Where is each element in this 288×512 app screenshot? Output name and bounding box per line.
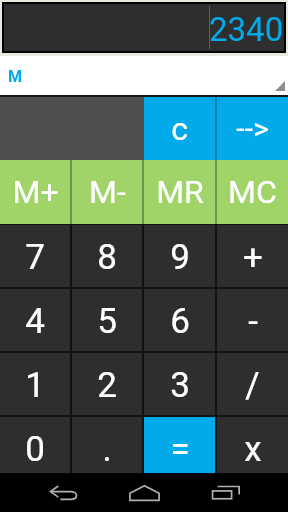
button[interactable]: = [144, 417, 215, 479]
staticText: M+ [12, 173, 59, 211]
button[interactable]: M [0, 56, 288, 95]
staticText: = [170, 429, 190, 470]
button[interactable]: --> [217, 97, 288, 160]
button[interactable]: MC [217, 160, 288, 224]
staticText: 1 [25, 365, 45, 406]
staticText: --> [236, 111, 269, 146]
staticText: 4 [25, 301, 45, 342]
staticText: 5 [97, 301, 117, 342]
staticText: - [248, 301, 258, 342]
button[interactable]: + [217, 225, 288, 287]
button[interactable]: Back [24, 473, 104, 512]
button[interactable]: c [144, 97, 215, 160]
staticText: 9 [170, 237, 190, 278]
staticText: 6 [170, 301, 190, 342]
button[interactable]: x [217, 417, 288, 479]
button[interactable]: / [217, 353, 288, 415]
staticText: c [171, 110, 188, 148]
staticText: 2 [97, 365, 117, 406]
staticText: 8 [97, 237, 117, 278]
button[interactable]: 5 [72, 289, 142, 351]
staticText: MC [228, 173, 277, 211]
staticText: / [245, 365, 260, 406]
staticText: MR [156, 173, 204, 211]
button[interactable]: M+ [0, 160, 70, 224]
button[interactable]: 1 [0, 353, 70, 415]
button[interactable]: - [217, 289, 288, 351]
staticText: 2340 [209, 10, 284, 49]
staticText: 0 [25, 429, 45, 470]
button[interactable]: 0 [0, 417, 70, 479]
button[interactable]: 9 [144, 225, 215, 287]
button[interactable]: 7 [0, 225, 70, 287]
button[interactable]: M- [72, 160, 142, 224]
staticText: 3 [170, 365, 190, 406]
button[interactable]: 8 [72, 225, 142, 287]
button[interactable]: . [72, 417, 142, 479]
button[interactable]: MR [144, 160, 215, 224]
staticText: + [243, 237, 263, 278]
staticText: M [8, 67, 23, 86]
button[interactable]: Home [104, 473, 184, 512]
button[interactable]: 6 [144, 289, 215, 351]
button[interactable]: 2 [72, 353, 142, 415]
staticText: 7 [25, 237, 45, 278]
staticText: M- [89, 173, 126, 211]
button[interactable]: 3 [144, 353, 215, 415]
staticText: x [244, 429, 262, 470]
button[interactable]: Recent apps [186, 473, 266, 512]
staticText: . [102, 429, 112, 470]
button[interactable]: 4 [0, 289, 70, 351]
